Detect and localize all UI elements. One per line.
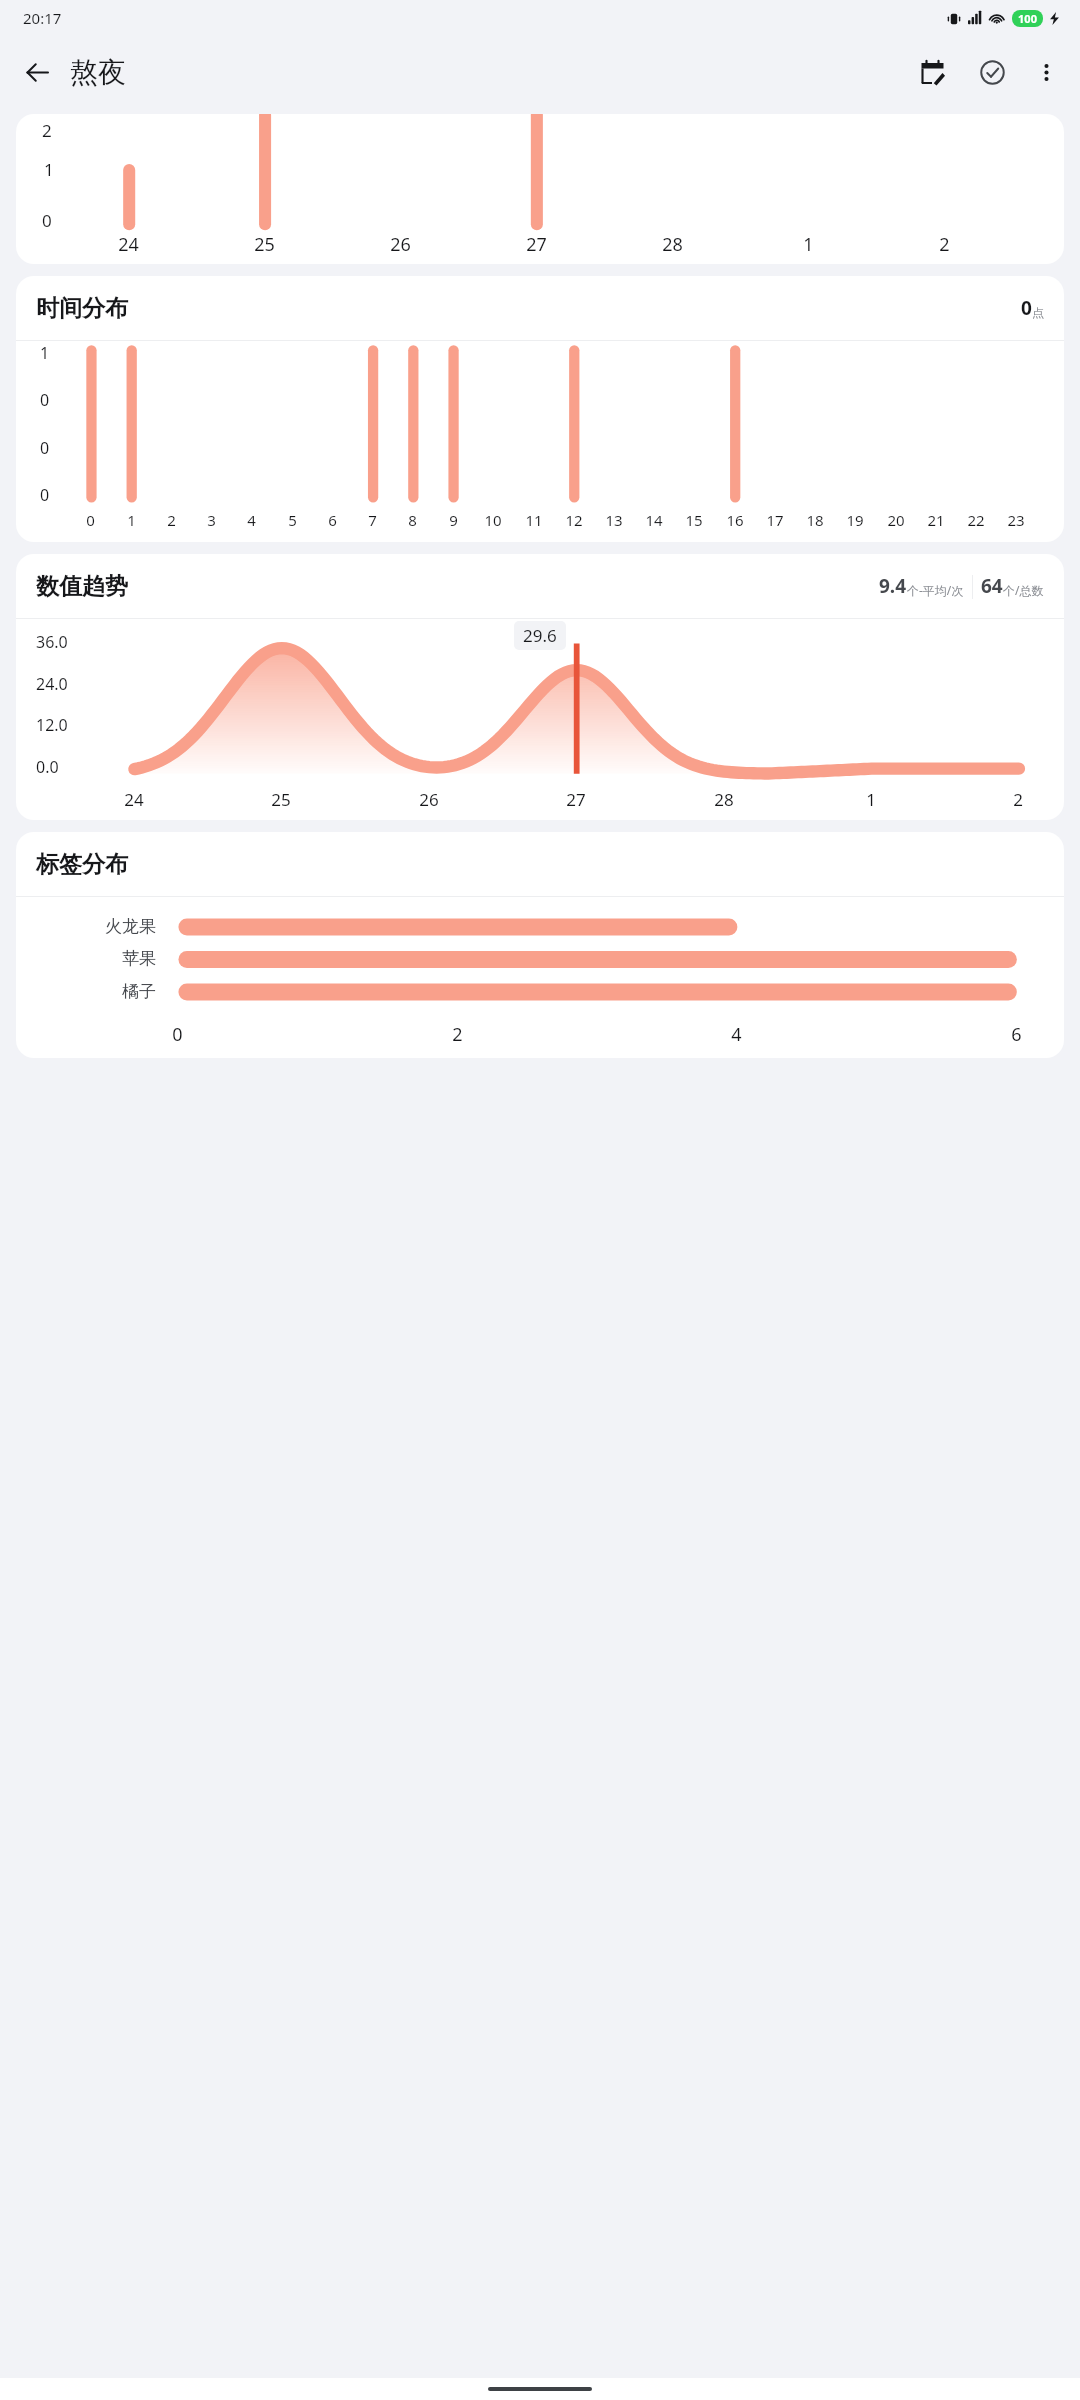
staticText: 64	[981, 573, 1003, 599]
staticText: 0	[40, 484, 50, 506]
staticText: 0	[86, 510, 95, 530]
staticText: 12.0	[36, 714, 68, 736]
staticText: 12	[565, 510, 583, 530]
staticText: 20:17	[23, 8, 62, 28]
staticText: 28	[714, 788, 734, 811]
staticText: 26	[419, 788, 439, 811]
staticText: 25	[254, 232, 275, 257]
staticText: 火龙果	[105, 916, 156, 937]
staticText: 1	[40, 342, 50, 364]
staticText: 1	[866, 788, 876, 811]
staticText: 19	[846, 510, 864, 530]
staticText: 15	[685, 510, 703, 530]
staticText: 11	[525, 510, 543, 530]
staticText: 0	[1021, 295, 1032, 321]
staticText: 数值趋势	[36, 572, 128, 601]
staticText: 0	[40, 389, 50, 411]
staticText: 2	[42, 119, 52, 142]
staticText: 14	[645, 510, 663, 530]
staticText: 时间分布	[36, 294, 128, 323]
staticText: 4	[247, 510, 256, 530]
staticText: 25	[271, 788, 291, 811]
staticText: 个/总数	[1003, 582, 1044, 598]
staticText: 2	[1013, 788, 1023, 811]
staticText: 0.0	[36, 756, 59, 778]
staticText: 6	[328, 510, 337, 530]
staticText: 2	[939, 232, 950, 257]
staticText: 21	[927, 510, 945, 530]
staticText: 24	[118, 232, 139, 257]
staticText: 8	[408, 510, 417, 530]
staticText: 7	[368, 510, 377, 530]
staticText: 27	[526, 232, 547, 257]
button[interactable]: More options	[1020, 46, 1072, 98]
staticText: 36.0	[36, 631, 68, 653]
staticText: 2	[167, 510, 176, 530]
staticText: 0	[40, 437, 50, 459]
staticText: 熬夜	[70, 55, 126, 90]
staticText: 24	[124, 788, 144, 811]
staticText: 6	[1011, 1022, 1022, 1047]
staticText: 9.4	[879, 573, 907, 599]
button[interactable]: Edit date	[906, 46, 958, 98]
button[interactable]: 标签分布	[16, 832, 1064, 1058]
staticText: 20	[887, 510, 905, 530]
staticText: 16	[726, 510, 744, 530]
staticText: 0	[42, 209, 52, 232]
staticText: 1	[44, 158, 54, 181]
button[interactable]: 2	[16, 114, 1064, 264]
staticText: 个-平均/次	[907, 582, 964, 598]
button[interactable]: Back	[12, 47, 62, 97]
staticText: 100	[1018, 11, 1037, 26]
button[interactable]: 数值趋势	[16, 554, 1064, 820]
staticText: 标签分布	[36, 850, 128, 879]
button[interactable]: 时间分布	[16, 276, 1064, 542]
button[interactable]: Mark done	[966, 46, 1018, 98]
staticText: 18	[806, 510, 824, 530]
staticText: 29.6	[523, 624, 557, 647]
staticText: 27	[566, 788, 586, 811]
staticText: 点	[1032, 305, 1044, 320]
staticText: 3	[207, 510, 216, 530]
staticText: 28	[662, 232, 683, 257]
staticText: 5	[288, 510, 297, 530]
staticText: 1	[127, 510, 136, 530]
staticText: 10	[484, 510, 502, 530]
staticText: 4	[731, 1022, 742, 1047]
staticText: 13	[605, 510, 623, 530]
staticText: 2	[452, 1022, 463, 1047]
staticText: 17	[766, 510, 784, 530]
staticText: 22	[967, 510, 985, 530]
staticText: 苹果	[122, 948, 156, 969]
staticText: 1	[803, 232, 814, 257]
staticText: 23	[1007, 510, 1025, 530]
staticText: 橘子	[122, 981, 156, 1002]
staticText: 26	[390, 232, 411, 257]
staticText: 24.0	[36, 673, 68, 695]
staticText: 9	[449, 510, 458, 530]
staticText: 0	[172, 1022, 183, 1047]
